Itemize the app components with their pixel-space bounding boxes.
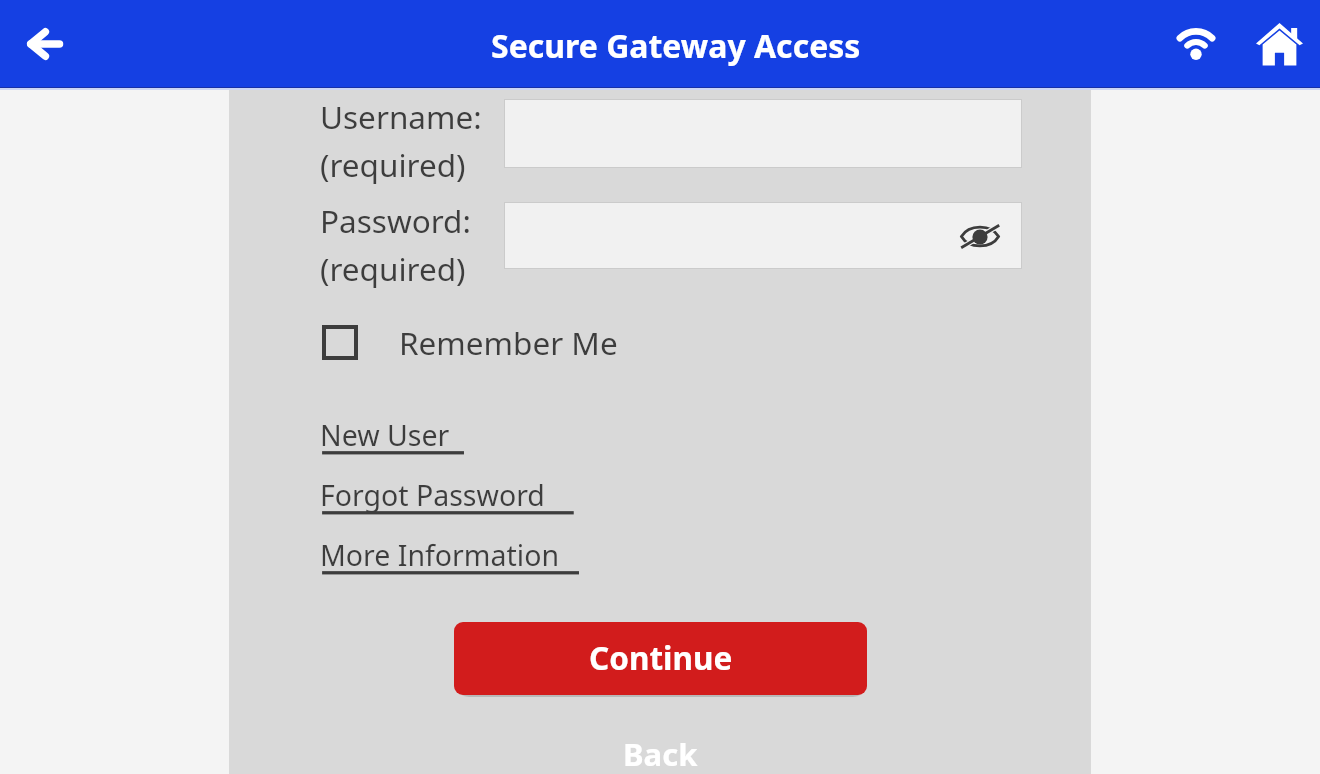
button[interactable]: Remember Me [322,321,618,364]
button[interactable]: Home [1244,10,1313,79]
staticText: Continue [589,636,733,679]
staticText: New User [320,416,450,455]
staticText: Remember Me [399,321,618,364]
button[interactable]: Show password [955,211,1005,261]
button[interactable]: Forgot Password [320,476,545,515]
button[interactable]: Wi-Fi [1161,10,1230,79]
staticText: Back [623,733,698,774]
button[interactable]: Back [454,715,867,774]
staticText: Secure Gateway Access [491,24,861,68]
button[interactable]: Continue [454,622,867,695]
staticText: Forgot Password [320,476,545,515]
staticText: More Information [320,536,560,575]
button[interactable]: New User [320,416,450,455]
button[interactable]: Back [9,10,78,79]
staticText: Password: (required) [320,199,471,291]
staticText: Username: (required) [320,95,482,187]
button[interactable]: More Information [320,536,560,575]
